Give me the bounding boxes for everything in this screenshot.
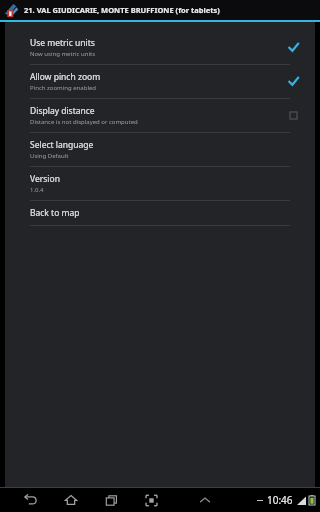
staticText: Allow pinch zoom	[30, 71, 101, 83]
button[interactable]: Use metric units	[5, 31, 315, 64]
staticText: Display distance	[30, 105, 95, 117]
other: App icon	[4, 3, 19, 18]
staticText: 1.0.4	[30, 186, 44, 194]
staticText: 21. VAL GIUDICARIE, MONTE BRUFFIONE (for…	[24, 5, 220, 15]
staticText: Select language	[30, 139, 94, 151]
button[interactable]: Expand	[194, 488, 216, 512]
other: Unchecked	[288, 110, 299, 121]
button[interactable]: Display distance	[5, 99, 315, 132]
button[interactable]: Back	[20, 488, 42, 512]
staticText: Now using metric units	[30, 50, 96, 58]
staticText: Pinch zooming enabled	[30, 84, 97, 92]
button[interactable]: Select language	[5, 133, 315, 166]
staticText: Distance is not displayed or computed	[30, 118, 138, 126]
staticText: 10:46	[267, 493, 293, 507]
other: Checked	[288, 42, 299, 53]
button[interactable]: Home	[60, 488, 82, 512]
button[interactable]: Recent apps	[100, 488, 122, 512]
button[interactable]: Screenshot	[140, 488, 162, 512]
staticText: Version	[30, 173, 60, 185]
button[interactable]: Version	[5, 167, 315, 200]
staticText: Back to map	[30, 207, 80, 219]
staticText: Use metric units	[30, 37, 95, 49]
button[interactable]: Allow pinch zoom	[5, 65, 315, 98]
button[interactable]: Back to map	[5, 201, 315, 225]
staticText: Using Default	[30, 152, 69, 160]
other: Checked	[288, 76, 299, 87]
